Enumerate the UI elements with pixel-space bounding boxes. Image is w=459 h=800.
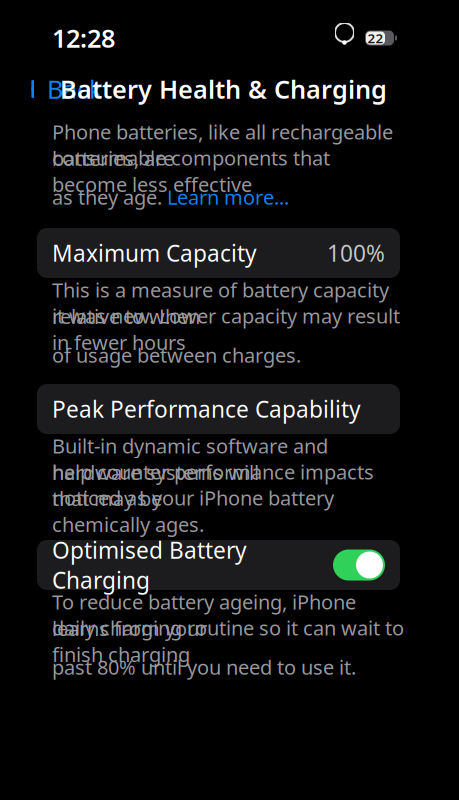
button[interactable]: Back [22,64,103,114]
button[interactable]: Peak Performance Capability [37,384,400,434]
staticText: help counter performance impacts that ma… [52,458,374,511]
staticText: Maximum Capacity [52,238,257,268]
staticText: Back [47,72,103,106]
staticText: Peak Performance Capability [52,394,361,424]
staticText: Battery Health & Charging [60,72,387,106]
staticText: Built-in dynamic software and hardware s… [52,432,328,485]
button[interactable]: Learn more... [167,184,289,210]
staticText: as they age. [52,184,167,210]
staticText: This is a measure of battery capacity re… [52,276,389,329]
staticText: daily charging routine so it can wait to… [52,614,404,667]
staticText: Learn more... [167,184,289,210]
staticText: Optimised Battery Charging [52,535,247,595]
staticText: past 80% until you need to use it. [52,654,356,680]
button[interactable]: Maximum Capacity [37,228,400,278]
staticText: 12:28 [52,21,115,55]
staticText: noticed as your iPhone battery chemicall… [52,484,334,537]
staticText: of usage between charges. [52,342,301,368]
staticText: 22 [367,29,383,47]
button[interactable]: Optimised Battery Charging [37,540,400,590]
staticText: 100% [327,238,385,268]
staticText: To reduce battery ageing, iPhone learns … [52,588,356,641]
staticText: consumable components that become less e… [52,144,330,197]
staticText: Phone batteries, like all rechargeable b… [52,118,393,171]
staticText: it was new. Lower capacity may result in… [52,302,400,355]
button[interactable]: Optimised Battery Charging [333,549,385,580]
